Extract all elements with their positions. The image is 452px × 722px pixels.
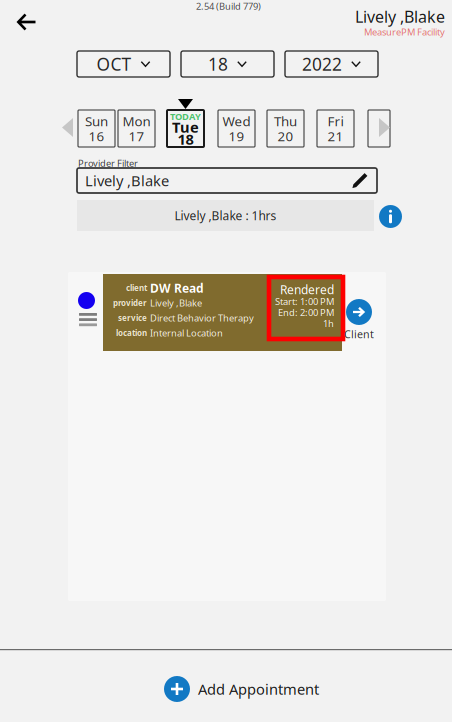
staticText: Lively ,Blake [85, 171, 169, 190]
button[interactable]: OCT [77, 51, 170, 77]
button[interactable]: Wed [218, 110, 255, 147]
button[interactable]: Fri [317, 110, 354, 147]
button[interactable]: Back [7, 5, 47, 39]
staticText: Direct Behavior Therapy [150, 312, 254, 324]
staticText: 1h [323, 317, 334, 330]
staticText: Mon [122, 112, 150, 130]
staticText: 18 [177, 129, 193, 149]
staticText: Rendered [280, 281, 334, 297]
staticText: 16 [88, 127, 104, 145]
staticText: End: 2:00 PM [278, 306, 334, 319]
staticText: Thu [274, 112, 297, 130]
staticText: 17 [128, 127, 144, 145]
button[interactable]: Info [379, 205, 402, 228]
staticText: 18 [208, 52, 228, 75]
staticText: 2022 [302, 52, 342, 75]
staticText: 20 [277, 127, 293, 145]
staticText: Start: 1:00 PM [275, 295, 334, 308]
staticText: Internal Location [150, 327, 223, 339]
staticText: Add Appointment [198, 679, 319, 699]
staticText: 2.54 (Build 779) [196, 0, 261, 12]
button[interactable]: Thu [267, 110, 304, 147]
button[interactable]: 18 [181, 51, 274, 77]
button[interactable]: client [103, 274, 342, 351]
staticText: Provider Filter [78, 157, 138, 169]
staticText: 19 [228, 127, 244, 145]
staticText: service [118, 313, 147, 323]
staticText: OCT [96, 52, 131, 75]
staticText: provider [113, 298, 147, 308]
staticText: Wed [222, 112, 250, 130]
button[interactable]: Sun [78, 110, 115, 147]
staticText: Lively ,Blake : 1hrs [174, 207, 276, 223]
staticText: DW Read [150, 280, 204, 296]
button[interactable]: Lively ,Blake [77, 168, 377, 193]
staticText: TODAY [170, 110, 201, 123]
button[interactable]: TODAY [167, 110, 204, 147]
button[interactable]: Mon [118, 110, 155, 147]
staticText: client [126, 283, 147, 293]
staticText: Client [344, 327, 374, 341]
staticText: Sun [85, 112, 108, 130]
staticText: location [116, 328, 147, 338]
button[interactable]: Previous days [62, 118, 73, 137]
staticText: Tue [172, 117, 199, 137]
button[interactable]: 2022 [285, 51, 378, 77]
staticText: Fri [327, 112, 343, 130]
button[interactable]: Add Appointment [164, 667, 324, 711]
staticText: MeasurePM Facility [364, 26, 445, 38]
staticText: Lively ,Blake [150, 297, 202, 309]
button[interactable]: Client [338, 299, 380, 341]
staticText: Lively ,Blake [355, 6, 445, 27]
staticText: 21 [327, 127, 343, 145]
button[interactable]: Next days [379, 118, 390, 137]
